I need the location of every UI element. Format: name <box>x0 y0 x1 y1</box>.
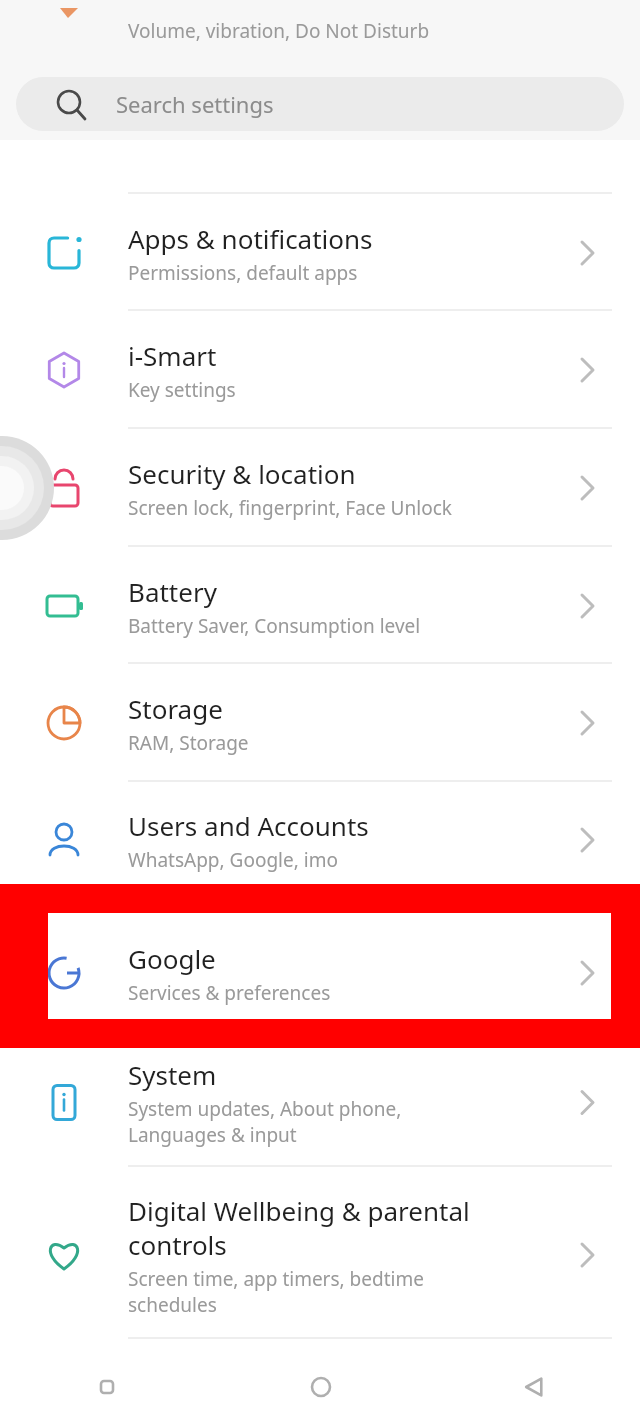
staticText: Services & preferences <box>128 980 331 1006</box>
staticText: RAM, Storage <box>128 730 249 756</box>
button[interactable]: i-Smart <box>0 320 640 420</box>
staticText: Digital Wellbeing & parental controls <box>128 1193 470 1262</box>
button[interactable]: Home <box>214 1352 427 1422</box>
staticText: Storage <box>128 691 223 726</box>
button[interactable]: System <box>0 1040 640 1165</box>
button[interactable]: Apps & notifications <box>0 203 640 303</box>
staticText: i-Smart <box>128 338 217 373</box>
button[interactable]: Back <box>427 1352 640 1422</box>
staticText: Key settings <box>128 377 236 403</box>
staticText: Screen lock, fingerprint, Face Unlock <box>128 495 452 521</box>
button[interactable]: Security & location <box>0 438 640 538</box>
button[interactable]: Google <box>0 923 640 1023</box>
staticText: System updates, About phone, Languages &… <box>128 1096 402 1148</box>
staticText: Apps & notifications <box>128 221 373 256</box>
staticText: Volume, vibration, Do Not Disturb <box>128 18 430 44</box>
staticText: Permissions, default apps <box>128 260 358 286</box>
staticText: Security & location <box>128 456 356 491</box>
staticText: System <box>128 1057 217 1092</box>
button[interactable]: Storage <box>0 673 640 773</box>
staticText: Battery Saver, Consumption level <box>128 613 421 639</box>
staticText: Google <box>128 941 216 976</box>
button[interactable]: Recent apps <box>0 1352 214 1422</box>
staticText: Battery <box>128 574 217 609</box>
staticText: Users and Accounts <box>128 808 369 843</box>
staticText: Screen time, app timers, bedtime schedul… <box>128 1266 424 1318</box>
button[interactable]: Search settings <box>16 77 624 131</box>
staticText: WhatsApp, Google, imo <box>128 847 338 873</box>
button[interactable]: Digital Wellbeing & parental controls <box>0 1180 640 1330</box>
button[interactable]: Users and Accounts <box>0 790 640 890</box>
button[interactable]: Battery <box>0 556 640 656</box>
staticText: Search settings <box>116 89 274 119</box>
